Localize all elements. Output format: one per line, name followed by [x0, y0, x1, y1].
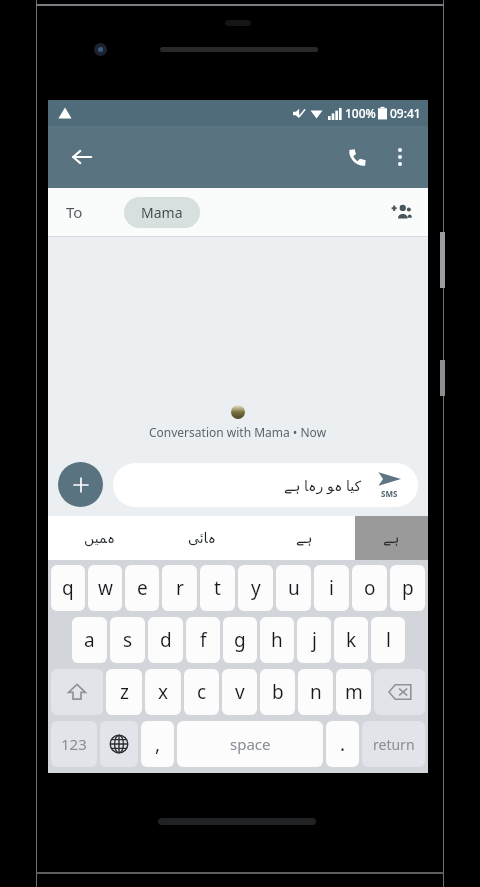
button[interactable]: r — [162, 565, 197, 611]
staticText: q — [62, 575, 74, 601]
button[interactable]: . — [326, 721, 359, 767]
button[interactable]: k — [334, 617, 368, 663]
staticText: j — [312, 627, 317, 653]
staticText: Mama — [141, 203, 183, 222]
button[interactable]: s — [110, 617, 145, 663]
staticText: r — [176, 575, 184, 601]
button[interactable]: d — [148, 617, 183, 663]
button[interactable]: b — [260, 669, 295, 715]
button[interactable]: Add recipient — [382, 193, 420, 231]
staticText: x — [158, 679, 169, 705]
staticText: b — [272, 679, 284, 705]
button[interactable]: n — [298, 669, 333, 715]
staticText: SMS — [381, 488, 398, 499]
staticText: return — [373, 735, 415, 754]
staticText: w — [98, 575, 113, 601]
button[interactable]: Shift — [51, 669, 103, 715]
button[interactable]: c — [184, 669, 219, 715]
button[interactable]: e — [125, 565, 159, 611]
staticText: d — [160, 627, 172, 653]
button[interactable]: Backspace — [374, 669, 425, 715]
button[interactable]: ہمیں — [48, 516, 151, 560]
button[interactable]: w — [88, 565, 122, 611]
button[interactable]: f — [186, 617, 220, 663]
staticText: ہے — [296, 530, 313, 546]
button[interactable]: z — [106, 669, 142, 715]
staticText: To — [66, 202, 83, 222]
staticText: Conversation with Mama • Now — [149, 424, 327, 440]
button[interactable]: Mama — [124, 197, 200, 228]
staticText: 123 — [61, 734, 87, 754]
staticText: ہائی — [188, 530, 217, 546]
staticText: s — [123, 627, 133, 653]
staticText: h — [271, 627, 283, 653]
staticText: i — [329, 575, 334, 601]
button[interactable]: , — [141, 721, 174, 767]
button[interactable]: Call — [336, 136, 378, 178]
button[interactable]: q — [51, 565, 85, 611]
button[interactable]: return — [362, 721, 425, 767]
staticText: ہے — [383, 530, 400, 546]
staticText: ہمیں — [84, 530, 116, 546]
button[interactable]: i — [314, 565, 349, 611]
button[interactable]: Change language — [100, 721, 138, 767]
staticText: c — [197, 679, 207, 705]
button[interactable]: y — [238, 565, 273, 611]
button[interactable]: کیا ہو رہا ہے — [113, 463, 418, 507]
staticText: a — [84, 627, 95, 653]
button[interactable]: More options — [380, 137, 420, 177]
staticText: o — [364, 575, 376, 601]
button[interactable]: ہے — [355, 516, 428, 560]
staticText: u — [288, 575, 300, 601]
staticText: t — [214, 575, 221, 601]
button[interactable]: 123 — [51, 721, 97, 767]
button[interactable]: x — [145, 669, 181, 715]
button[interactable]: j — [297, 617, 331, 663]
button[interactable]: h — [260, 617, 294, 663]
staticText: 100% — [345, 105, 376, 121]
button[interactable]: l — [371, 617, 405, 663]
staticText: . — [340, 731, 346, 757]
button[interactable]: space — [177, 721, 323, 767]
button[interactable]: Send SMS — [367, 463, 411, 507]
button[interactable]: ہائی — [151, 516, 253, 560]
staticText: کیا ہو رہا ہے — [284, 476, 362, 495]
staticText: 09:41 — [390, 105, 421, 121]
staticText: space — [230, 734, 271, 754]
staticText: v — [235, 679, 245, 705]
button[interactable]: u — [276, 565, 311, 611]
staticText: y — [251, 575, 261, 601]
staticText: e — [137, 575, 148, 601]
staticText: f — [200, 627, 207, 653]
staticText: p — [402, 575, 414, 601]
button[interactable]: m — [336, 669, 371, 715]
staticText: z — [120, 679, 129, 705]
button[interactable]: g — [223, 617, 257, 663]
staticText: l — [386, 627, 391, 653]
button[interactable]: a — [72, 617, 107, 663]
button[interactable]: Back — [62, 137, 102, 177]
button[interactable]: ہے — [253, 516, 355, 560]
button[interactable]: t — [200, 565, 235, 611]
staticText: m — [345, 679, 363, 705]
staticText: , — [155, 731, 161, 757]
button[interactable]: v — [222, 669, 257, 715]
staticText: n — [310, 679, 322, 705]
button[interactable]: p — [390, 565, 425, 611]
button[interactable]: o — [352, 565, 387, 611]
staticText: g — [234, 627, 246, 653]
staticText: k — [346, 627, 357, 653]
button[interactable]: Attach — [58, 462, 103, 507]
